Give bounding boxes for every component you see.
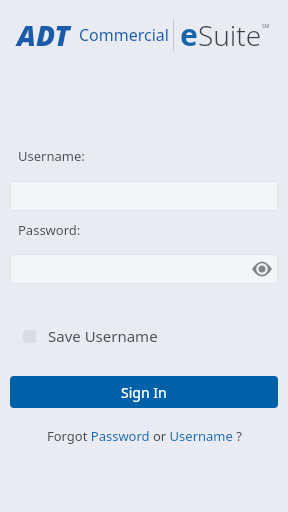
staticText: ADT (17, 16, 70, 54)
staticText: Save Username (48, 326, 158, 346)
staticText: Commercial (79, 24, 169, 46)
staticText: Sign In (121, 383, 167, 402)
staticText: eSuite (180, 14, 262, 55)
staticText: Forgot Password or Username ? (47, 427, 242, 445)
button[interactable] (10, 254, 278, 284)
button[interactable]: Forgot Password or Username ? (0, 427, 288, 445)
button[interactable] (10, 181, 278, 211)
button[interactable]: Save Username (23, 326, 158, 346)
staticText: Password: (18, 221, 81, 239)
staticText: Username: (18, 147, 85, 165)
button[interactable]: Sign In (10, 376, 278, 408)
button[interactable] (252, 261, 272, 277)
staticText: SM (262, 23, 270, 30)
